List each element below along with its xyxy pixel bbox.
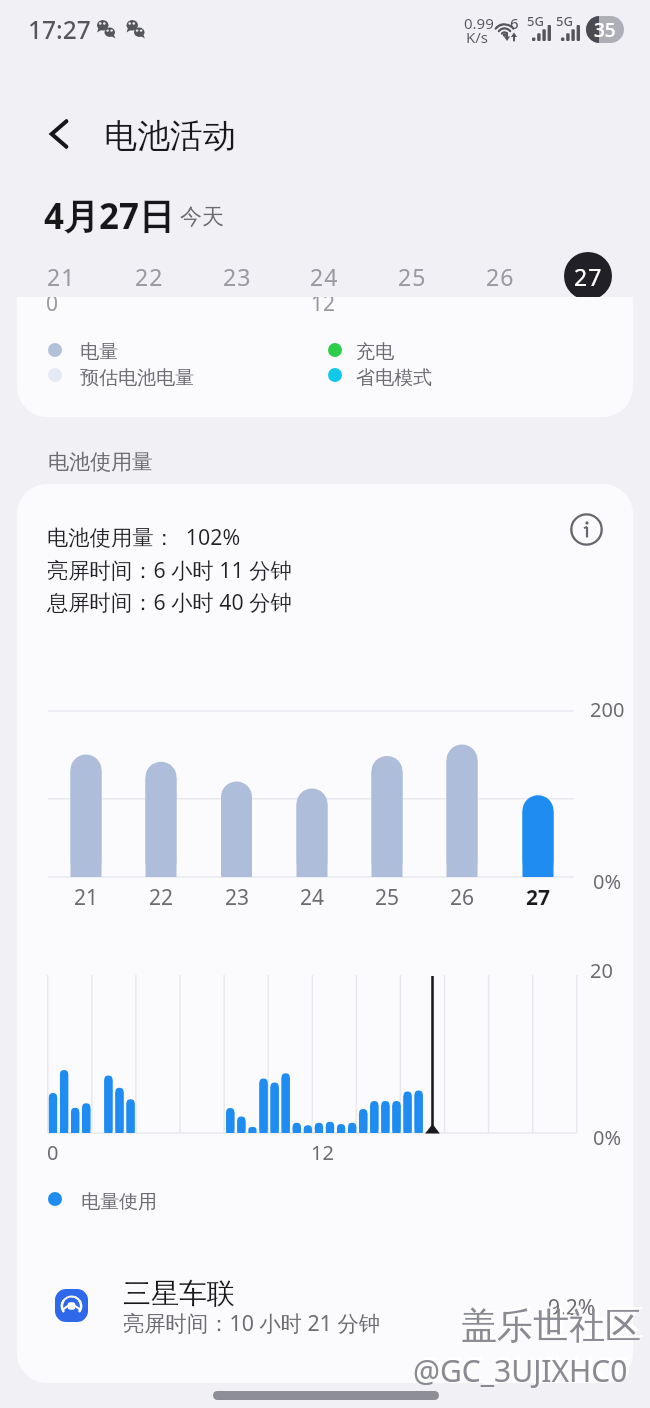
staticText: 26 — [450, 883, 475, 911]
staticText: @GC_3UJIXHC0 — [416, 1347, 631, 1388]
staticText: 27 — [574, 261, 603, 292]
staticText: 21 — [47, 261, 76, 292]
staticText: 盖乐世社区 — [461, 1303, 641, 1348]
staticText: 35 — [594, 17, 616, 43]
button[interactable]: 27 — [561, 249, 615, 303]
staticText: 26 — [486, 261, 515, 292]
staticText: 25 — [375, 883, 400, 911]
staticText: 亮屏时间：10 小时 21 分钟 — [123, 1308, 381, 1337]
staticText: K/s — [466, 27, 489, 47]
button[interactable]: 21 — [34, 249, 88, 303]
button[interactable]: Info — [562, 505, 610, 553]
staticText: 息屏时间：6 小时 40 分钟 — [47, 587, 292, 616]
staticText: 23 — [225, 883, 250, 911]
staticText: 三星车联 — [123, 1276, 235, 1311]
staticText: 充电 — [356, 340, 394, 364]
staticText: 0% — [593, 868, 622, 895]
button[interactable] — [17, 1266, 633, 1356]
staticText: 21 — [74, 883, 99, 911]
button[interactable]: 24 — [297, 249, 351, 303]
staticText: 22 — [135, 261, 164, 292]
staticText: 20 — [590, 957, 613, 984]
staticText: 12 — [311, 1139, 334, 1166]
staticText: 9.2% — [548, 1293, 596, 1322]
staticText: 22 — [149, 883, 174, 911]
staticText: 电量 — [80, 340, 118, 364]
staticText: 200 — [590, 696, 625, 723]
staticText: 省电模式 — [356, 366, 432, 390]
staticText: 预估电池电量 — [80, 366, 194, 390]
staticText: 电池使用量： 102% — [47, 522, 241, 551]
staticText: 今天 — [180, 203, 224, 231]
staticText: 25 — [398, 261, 427, 292]
staticText: 电池使用量 — [48, 449, 153, 475]
button[interactable]: 26 — [473, 249, 527, 303]
staticText: 0 — [46, 297, 59, 318]
staticText: 0.99 — [464, 13, 494, 33]
staticText: 17:27 — [28, 13, 91, 46]
staticText: 亮屏时间：6 小时 11 分钟 — [47, 555, 292, 584]
staticText: 电量使用 — [81, 1190, 157, 1214]
button[interactable]: 25 — [385, 249, 439, 303]
staticText: 5G — [556, 12, 573, 30]
staticText: 23 — [223, 261, 252, 292]
staticText: 6 — [510, 13, 519, 33]
staticText: 5G — [527, 12, 544, 30]
staticText: 盖乐世社区 — [464, 1300, 644, 1345]
staticText: 24 — [310, 261, 339, 292]
staticText: 0 — [47, 1139, 59, 1166]
staticText: 0% — [593, 1124, 622, 1151]
staticText: 12 — [311, 297, 336, 318]
button[interactable]: 22 — [122, 249, 176, 303]
button[interactable]: 23 — [210, 249, 264, 303]
staticText: 电池活动 — [104, 115, 236, 157]
staticText: @GC_3UJIXHC0 — [413, 1350, 628, 1391]
staticText: 27 — [526, 883, 551, 911]
staticText: 24 — [300, 883, 325, 911]
staticText: 4月27日 — [44, 192, 175, 240]
button[interactable]: Back — [34, 108, 86, 160]
